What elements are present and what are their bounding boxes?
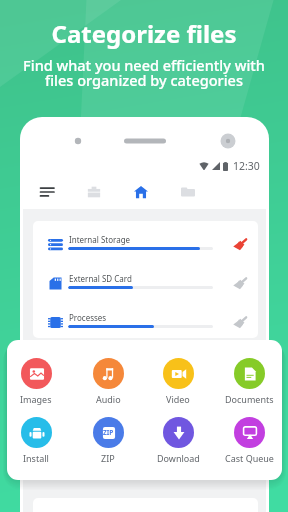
staticText: Documents bbox=[225, 393, 274, 405]
staticText: Video bbox=[166, 393, 190, 405]
button[interactable]: Install bbox=[7, 417, 66, 464]
staticText: Internal Storage bbox=[69, 234, 131, 245]
button[interactable]: Audio bbox=[78, 358, 138, 405]
staticText: Processes bbox=[69, 312, 107, 323]
button[interactable]: Menu bbox=[32, 177, 62, 207]
staticText: Install bbox=[23, 452, 49, 464]
button[interactable]: Images bbox=[7, 358, 66, 405]
button[interactable]: Internal Storage bbox=[33, 228, 258, 267]
staticText: ZIP bbox=[101, 452, 115, 464]
button[interactable]: Download bbox=[148, 417, 208, 464]
button[interactable]: Cast Queue bbox=[219, 417, 279, 464]
button[interactable]: Home bbox=[126, 177, 156, 207]
staticText: 12:30 bbox=[233, 159, 260, 173]
staticText: Images bbox=[20, 393, 52, 405]
button[interactable]: Clean bbox=[227, 309, 253, 335]
staticText: ZIP bbox=[103, 428, 114, 437]
staticText: Categorize files bbox=[0, 17, 288, 50]
staticText: Download bbox=[157, 452, 200, 464]
button[interactable]: Clean bbox=[227, 231, 253, 257]
button[interactable]: Clean bbox=[227, 270, 253, 296]
button[interactable]: Folders bbox=[173, 177, 203, 207]
staticText: Find what you need efficiently with file… bbox=[0, 55, 288, 90]
staticText: Audio bbox=[96, 393, 121, 405]
button[interactable]: External SD Card bbox=[33, 267, 258, 306]
button[interactable]: Processes bbox=[33, 306, 258, 338]
staticText: External SD Card bbox=[69, 273, 132, 284]
button[interactable]: Documents bbox=[219, 358, 279, 405]
button[interactable]: Work bbox=[79, 177, 109, 207]
button[interactable]: Video bbox=[148, 358, 208, 405]
staticText: Cast Queue bbox=[225, 452, 274, 464]
button[interactable]: ZIP bbox=[78, 417, 138, 464]
